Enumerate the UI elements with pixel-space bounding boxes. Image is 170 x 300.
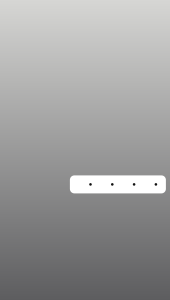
button[interactable]: Page indicator bbox=[70, 175, 166, 193]
